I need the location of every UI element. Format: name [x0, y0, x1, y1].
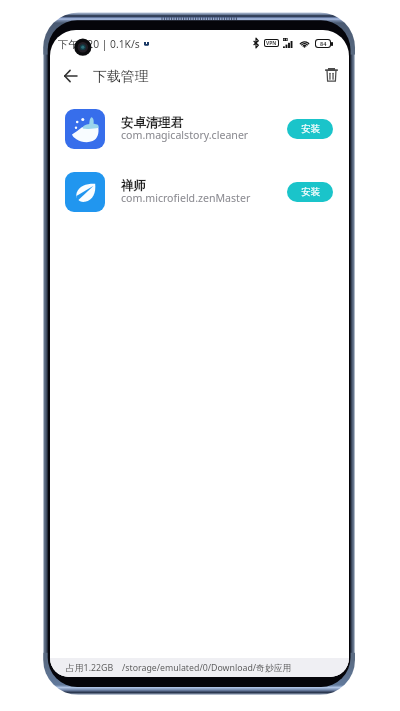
staticText: 安装: [301, 186, 320, 198]
staticText: 下午2:20 | 0.1K/s: [58, 37, 140, 51]
staticText: 禅师: [121, 178, 146, 194]
button[interactable]: Back: [52, 58, 88, 94]
button[interactable]: 安装: [287, 119, 333, 139]
button[interactable]: 安装: [287, 182, 333, 202]
button[interactable]: 禅师: [50, 160, 349, 223]
staticText: /storage/emulated/0/Download/奇妙应用: [122, 662, 292, 674]
staticText: com.microfield.zenMaster: [121, 191, 251, 205]
staticText: VPN: [266, 40, 277, 46]
staticText: com.magicalstory.cleaner: [121, 128, 249, 142]
button[interactable]: Delete all: [316, 60, 346, 90]
staticText: 安卓清理君: [121, 115, 183, 131]
staticText: 84: [320, 40, 327, 47]
staticText: 占用1.22GB: [66, 662, 114, 674]
button[interactable]: 安卓清理君: [50, 97, 349, 160]
staticText: 安装: [301, 123, 320, 135]
staticText: 下载管理: [93, 68, 149, 85]
